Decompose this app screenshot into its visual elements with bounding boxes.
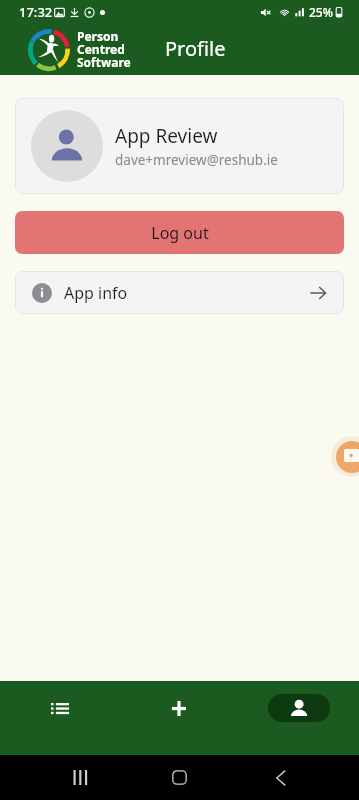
button[interactable]: List <box>0 681 119 735</box>
staticText: dave+mreview@reshub.ie <box>115 151 278 169</box>
other: Open app info <box>308 283 328 303</box>
button[interactable]: Screen recorder <box>331 436 359 477</box>
staticText: Profile <box>165 35 226 62</box>
button[interactable]: Recent apps <box>64 762 95 793</box>
button[interactable]: Home <box>164 762 195 793</box>
staticText: 17:32 <box>19 3 53 21</box>
button[interactable]: Profile <box>239 681 359 735</box>
staticText: Centred <box>77 44 125 57</box>
staticText: App info <box>64 282 128 304</box>
staticText: 25% <box>309 4 333 20</box>
staticText: App Review <box>115 123 218 149</box>
button[interactable]: Back <box>265 762 296 793</box>
button[interactable]: Add <box>119 681 239 735</box>
staticText: Person <box>77 31 119 44</box>
staticText: Log out <box>151 222 209 244</box>
staticText: Software <box>77 57 131 70</box>
button[interactable]: App info <box>15 271 344 314</box>
button[interactable]: Log out <box>15 211 344 254</box>
button[interactable]: App Review <box>15 98 344 194</box>
